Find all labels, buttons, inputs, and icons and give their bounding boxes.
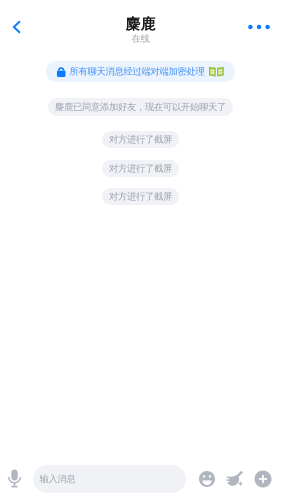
button[interactable]: Voice message xyxy=(0,461,33,497)
staticText: 所有聊天消息经过端对端加密处理 xyxy=(70,66,205,77)
staticText: 在线 xyxy=(131,33,149,44)
staticText: 对方进行了截屏 xyxy=(109,191,172,202)
button[interactable]: 输入消息 xyxy=(33,465,186,493)
button[interactable]: More xyxy=(237,12,281,42)
staticText: 对方进行了截屏 xyxy=(109,163,172,174)
staticText: 对方进行了截屏 xyxy=(109,134,172,145)
button[interactable]: Clear xyxy=(220,461,249,497)
button[interactable]: Back xyxy=(0,12,34,42)
staticText: 输入消息 xyxy=(39,473,75,485)
staticText: 麋鹿已同意添加好友，现在可以开始聊天了 xyxy=(55,101,226,113)
button[interactable]: More options xyxy=(249,461,277,497)
button[interactable]: Emoji xyxy=(194,461,220,497)
staticText: 麋鹿 xyxy=(125,15,155,33)
